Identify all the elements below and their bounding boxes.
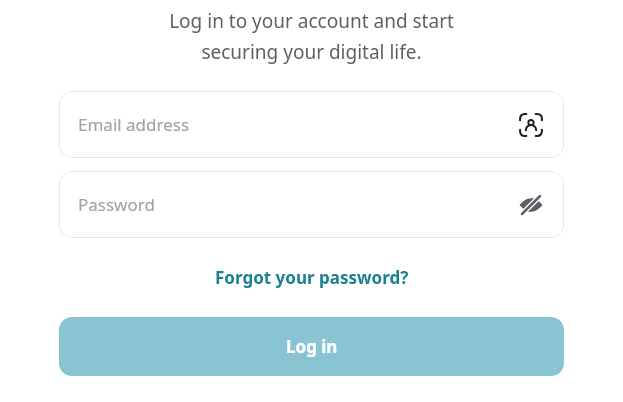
staticText: Forgot your password? [215, 266, 409, 289]
button[interactable]: Show password [516, 190, 546, 220]
staticText: Password [78, 193, 516, 216]
staticText: Log in to your account and start securin… [169, 8, 454, 64]
button[interactable]: Log in [59, 317, 564, 376]
button[interactable]: Password [59, 171, 564, 238]
staticText: Log in [286, 335, 338, 358]
button[interactable]: Forgot your password? [209, 262, 415, 293]
button[interactable]: Email address [59, 91, 564, 158]
staticText: Email address [78, 113, 516, 136]
button[interactable]: Scan face to sign in [516, 110, 546, 140]
